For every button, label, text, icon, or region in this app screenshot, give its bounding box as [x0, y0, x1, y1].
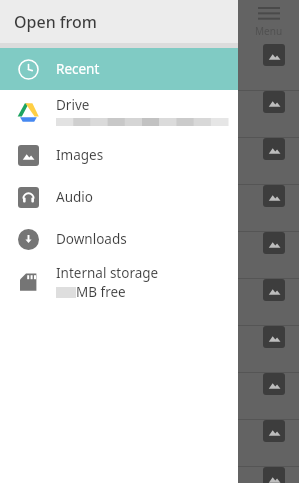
- staticText: Something long: [14, 93, 257, 111]
- button[interactable]: Internal storage: [0, 260, 238, 304]
- staticText: Images: [56, 146, 104, 164]
- staticText: Something long: [14, 328, 257, 346]
- staticText: Something long: [14, 469, 257, 483]
- staticText: Something long: [14, 234, 257, 252]
- staticText: Downloads: [56, 230, 127, 248]
- button[interactable]: Drive: [0, 90, 238, 134]
- staticText: Something long: [14, 281, 257, 299]
- button[interactable]: Recent: [0, 48, 238, 90]
- staticText: Internal storage: [56, 264, 159, 282]
- button[interactable]: Audio: [0, 176, 238, 218]
- staticText: Recent: [56, 60, 100, 78]
- button[interactable]: Downloads: [0, 218, 238, 260]
- staticText: MB free: [76, 283, 126, 301]
- button[interactable]: Menu: [0, 0, 299, 44]
- staticText: Something long: [14, 46, 257, 64]
- staticText: Something long: [14, 187, 257, 205]
- staticText: Something long: [14, 140, 257, 158]
- staticText: Menu: [255, 24, 283, 38]
- staticText: Audio: [56, 188, 93, 206]
- staticText: Drive: [56, 96, 90, 114]
- staticText: Something long: [14, 422, 257, 440]
- staticText: Something long: [14, 375, 257, 393]
- button[interactable]: Images: [0, 134, 238, 176]
- staticText: Open from: [14, 11, 97, 33]
